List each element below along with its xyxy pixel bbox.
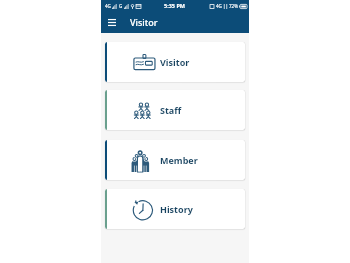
- staticText: Member: [160, 154, 198, 166]
- staticText: History: [160, 203, 193, 215]
- button[interactable]: Visitor: [105, 42, 245, 82]
- staticText: 4G: [105, 3, 111, 9]
- button[interactable]: Member: [105, 140, 245, 180]
- button[interactable]: History: [105, 189, 245, 229]
- staticText: 5:35 PM: [164, 2, 186, 9]
- staticText: 72%: [229, 3, 238, 9]
- staticText: Visitor: [130, 16, 158, 28]
- staticText: Staff: [160, 104, 182, 116]
- button[interactable]: Open navigation menu: [101, 11, 123, 33]
- staticText: Visitor: [160, 56, 190, 68]
- staticText: 4G: [216, 3, 222, 9]
- staticText: G: [119, 3, 123, 9]
- button[interactable]: Staff: [105, 90, 245, 130]
